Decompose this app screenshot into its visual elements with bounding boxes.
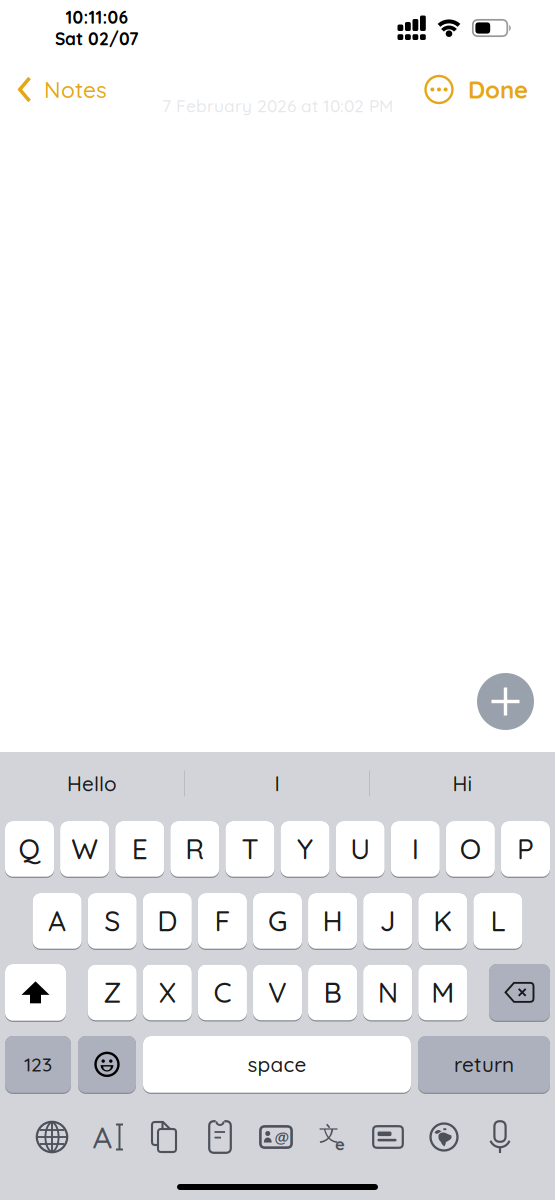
button[interactable]: Web xyxy=(416,1118,472,1156)
button[interactable]: J xyxy=(363,893,412,950)
staticText: E xyxy=(132,831,148,866)
button[interactable]: N xyxy=(363,964,412,1021)
button[interactable]: L xyxy=(473,893,522,950)
staticText: T xyxy=(241,831,258,866)
button[interactable]: P xyxy=(501,821,550,878)
staticText: X xyxy=(159,975,176,1010)
button[interactable]: H xyxy=(308,893,357,950)
button[interactable]: Add xyxy=(477,673,534,730)
button[interactable]: Dictation xyxy=(472,1118,528,1156)
button[interactable]: U xyxy=(336,821,385,878)
staticText: F xyxy=(214,903,230,938)
button[interactable]: I xyxy=(185,752,369,815)
button[interactable]: T xyxy=(225,821,274,878)
button[interactable]: I xyxy=(391,821,440,878)
staticText: J xyxy=(380,903,396,938)
staticText: A xyxy=(48,903,66,938)
button[interactable]: W xyxy=(60,821,109,878)
button[interactable]: More options xyxy=(425,75,453,103)
staticText: Notes xyxy=(44,75,107,104)
button[interactable]: 123 xyxy=(5,1036,71,1094)
staticText: 7 February 2026 at 10:02 PM xyxy=(162,95,393,117)
staticText: @ xyxy=(275,1128,289,1146)
button[interactable]: Paste xyxy=(192,1118,248,1156)
staticText: space xyxy=(247,1051,306,1077)
button[interactable]: Copy xyxy=(136,1118,192,1156)
staticText: M xyxy=(431,975,454,1010)
staticText: C xyxy=(213,975,231,1010)
button[interactable]: Z xyxy=(88,964,137,1021)
button[interactable]: Back to Notes xyxy=(18,75,107,104)
button[interactable]: B xyxy=(308,964,357,1021)
staticText: S xyxy=(104,903,120,938)
staticText: 10:11:06 xyxy=(65,6,128,28)
button[interactable]: A xyxy=(32,893,82,950)
button[interactable]: return xyxy=(418,1036,550,1094)
staticText: N xyxy=(378,975,398,1010)
button[interactable]: space xyxy=(143,1036,411,1094)
button[interactable]: Templates xyxy=(360,1118,416,1156)
button[interactable]: Contacts xyxy=(248,1118,304,1156)
staticText: W xyxy=(71,831,98,866)
staticText: e xyxy=(335,1134,345,1154)
staticText: I xyxy=(274,771,279,796)
button[interactable]: K xyxy=(418,893,467,950)
button[interactable]: Next keyboard xyxy=(24,1118,80,1156)
staticText: G xyxy=(268,903,287,938)
button[interactable]: D xyxy=(143,893,192,950)
button[interactable]: O xyxy=(446,821,495,878)
staticText: R xyxy=(185,831,204,866)
button[interactable]: M xyxy=(418,964,467,1021)
button[interactable]: Hello xyxy=(0,752,184,815)
staticText: Z xyxy=(103,975,121,1010)
staticText: V xyxy=(268,975,287,1010)
button[interactable]: X xyxy=(143,964,192,1021)
button[interactable]: Hi xyxy=(370,752,555,815)
button[interactable]: R xyxy=(170,821,219,878)
button[interactable]: S xyxy=(88,893,137,950)
staticText: K xyxy=(433,903,452,938)
button[interactable]: Text tools xyxy=(80,1118,136,1156)
button[interactable]: Q xyxy=(5,821,54,878)
staticText: L xyxy=(490,903,505,938)
button[interactable]: Done xyxy=(453,74,528,104)
staticText: return xyxy=(454,1051,514,1077)
staticText: Hello xyxy=(67,771,117,796)
button[interactable]: F xyxy=(198,893,247,950)
staticText: B xyxy=(324,975,342,1010)
staticText: Y xyxy=(297,831,313,866)
staticText: 文 xyxy=(319,1122,339,1146)
staticText: Sat 02/07 xyxy=(55,28,139,50)
button[interactable]: Translate xyxy=(304,1118,360,1156)
button[interactable]: G xyxy=(253,893,302,950)
button[interactable]: V xyxy=(253,964,302,1021)
staticText: D xyxy=(157,903,177,938)
button[interactable]: Shift xyxy=(5,964,66,1022)
staticText: H xyxy=(323,903,343,938)
staticText: I xyxy=(412,831,419,866)
button[interactable]: Delete xyxy=(489,964,550,1022)
staticText: U xyxy=(350,831,370,866)
staticText: A xyxy=(92,1118,112,1156)
staticText: Q xyxy=(18,831,40,866)
staticText: P xyxy=(517,831,534,866)
staticText: O xyxy=(460,831,481,866)
button[interactable]: C xyxy=(198,964,247,1021)
staticText: Hi xyxy=(452,771,472,796)
staticText: 123 xyxy=(24,1052,52,1076)
button[interactable]: Y xyxy=(280,821,330,878)
staticText: Done xyxy=(468,74,528,104)
button[interactable]: E xyxy=(115,821,164,878)
button[interactable]: Emoji xyxy=(78,1036,136,1094)
